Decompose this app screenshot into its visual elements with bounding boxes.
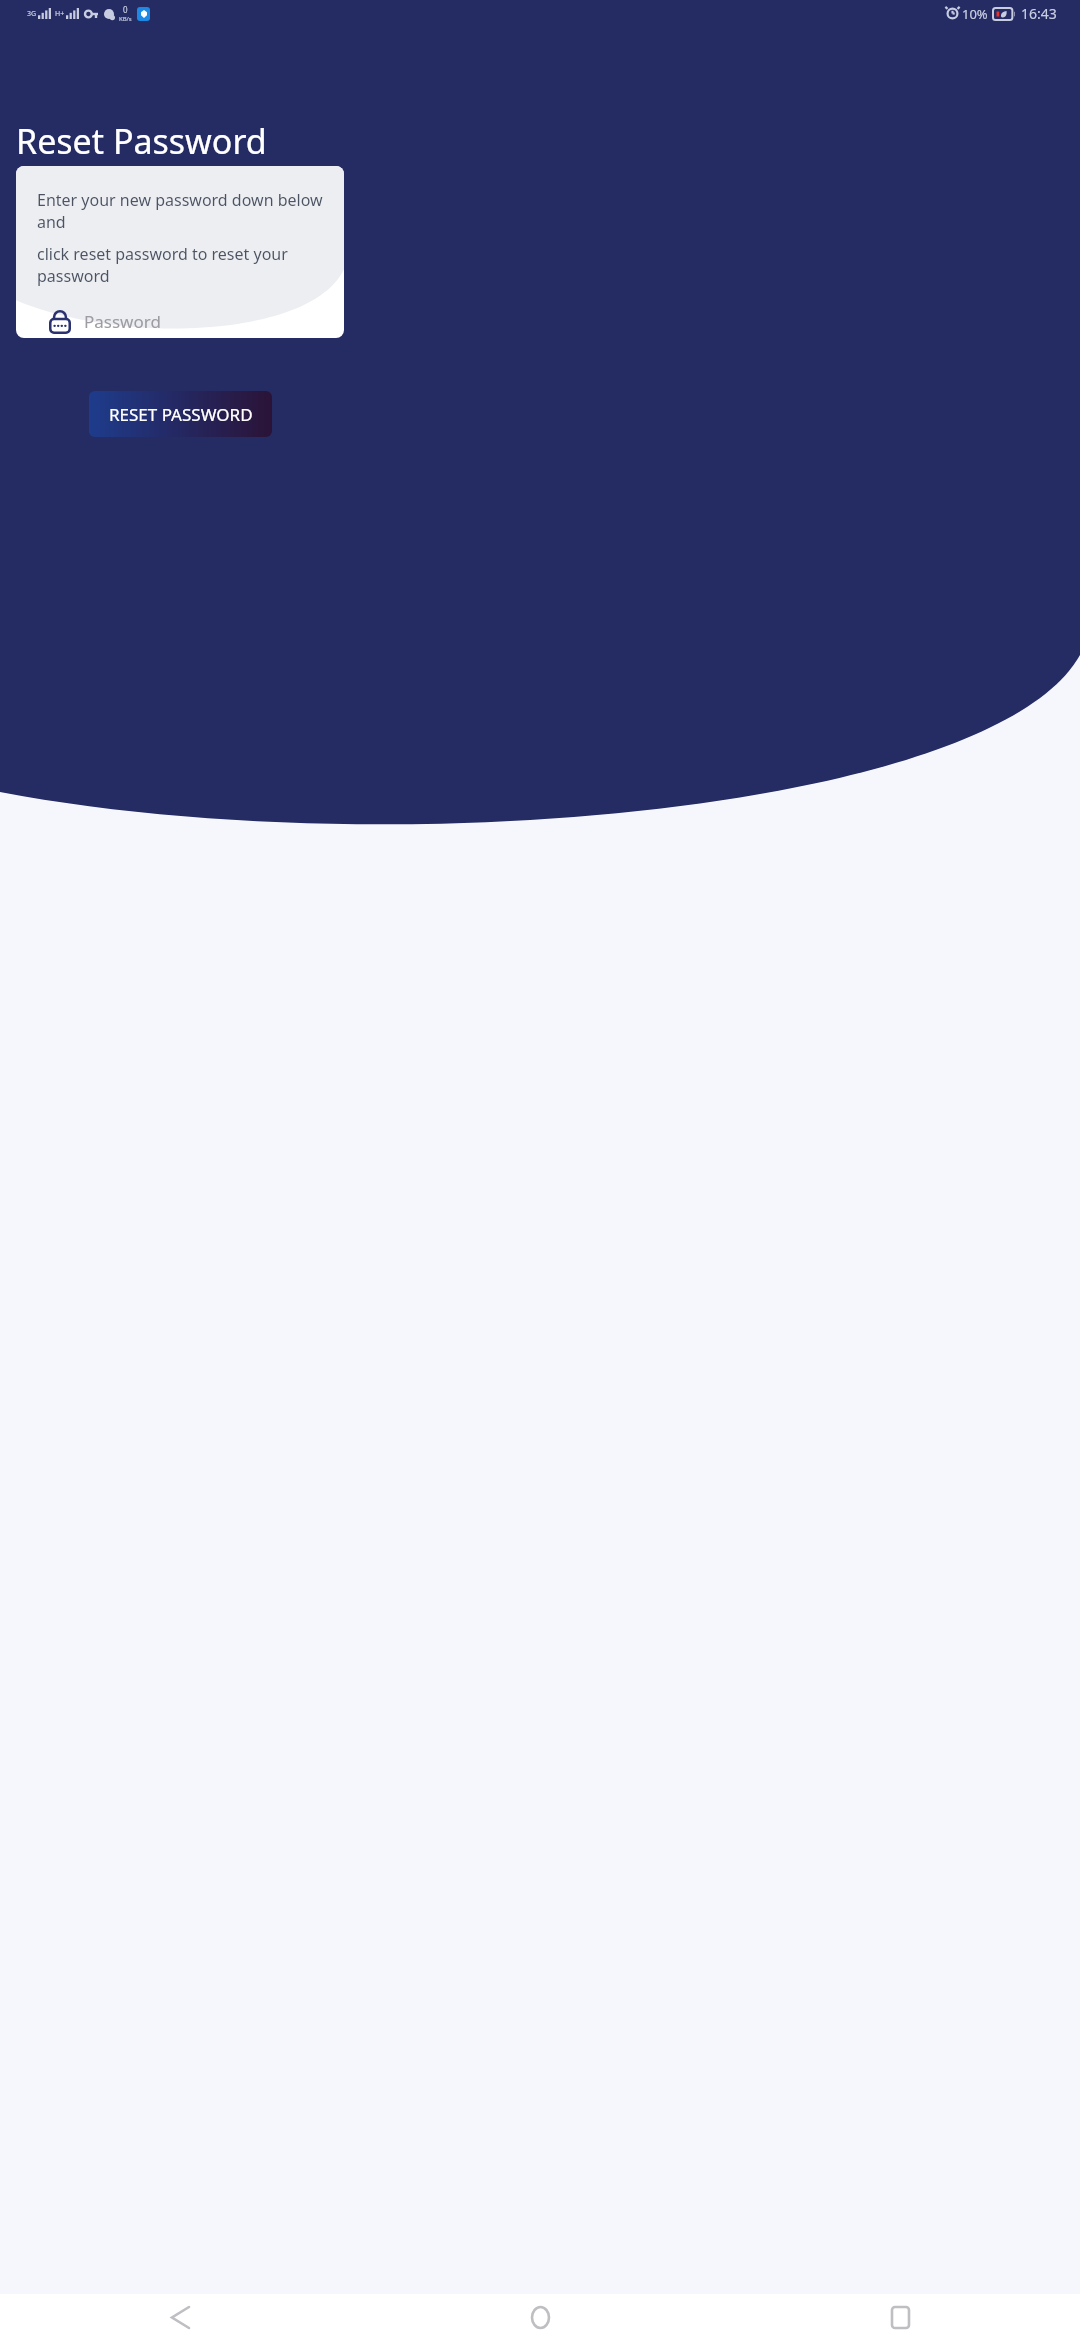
- staticText: 0: [123, 4, 128, 15]
- button[interactable]: RESET PASSWORD: [89, 391, 272, 437]
- button[interactable]: Back: [0, 2294, 360, 2340]
- staticText: 16:43: [1021, 4, 1057, 23]
- button[interactable]: Home: [360, 2294, 720, 2340]
- staticText: Enter your new password down below and: [37, 189, 344, 233]
- staticText: KB/s: [119, 15, 132, 23]
- button[interactable]: Password: [49, 309, 319, 334]
- staticText: 3G: [27, 9, 37, 19]
- staticText: RESET PASSWORD: [109, 403, 253, 426]
- staticText: click reset password to reset your passw…: [37, 243, 344, 287]
- staticText: 10%: [962, 5, 988, 23]
- staticText: Password: [84, 310, 161, 333]
- staticText: Reset Password: [16, 118, 267, 164]
- staticText: H+: [55, 9, 65, 19]
- button[interactable]: Recent apps: [720, 2294, 1080, 2340]
